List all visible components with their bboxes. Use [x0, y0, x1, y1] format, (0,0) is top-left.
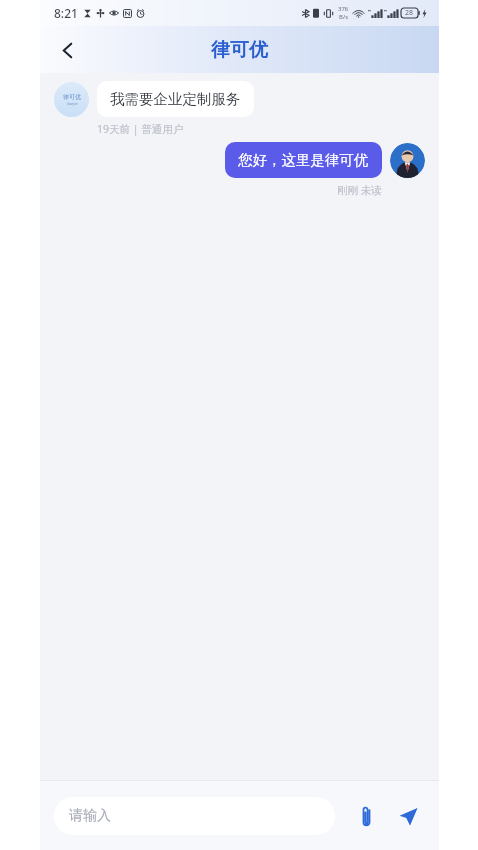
staticText: 我需要企业定制服务 — [110, 90, 241, 108]
button[interactable]: 您好，这里是律可优 — [225, 142, 382, 178]
staticText: lawyer — [67, 101, 78, 106]
button[interactable]: Avatar — [54, 82, 89, 117]
staticText: 19天前 | 普通用户 — [97, 122, 184, 136]
staticText: 8:21 — [54, 5, 78, 21]
staticText: 28 — [405, 8, 414, 18]
staticText: B/s — [339, 13, 349, 21]
button[interactable]: Send — [391, 800, 423, 832]
button[interactable]: 我需要企业定制服务 — [97, 81, 254, 117]
staticText: 律可优 — [63, 93, 81, 101]
staticText: 请输入 — [69, 807, 111, 825]
staticText: 您好，这里是律可优 — [238, 151, 369, 169]
button[interactable]: Back — [46, 29, 88, 71]
staticText: 刚刚 未读 — [337, 183, 382, 197]
staticText: 律可优 — [211, 38, 268, 62]
staticText: 376 — [338, 5, 349, 13]
button[interactable]: Attach file — [351, 801, 381, 831]
button[interactable]: 请输入 — [54, 797, 335, 835]
button[interactable]: Lawyer avatar — [390, 143, 425, 178]
